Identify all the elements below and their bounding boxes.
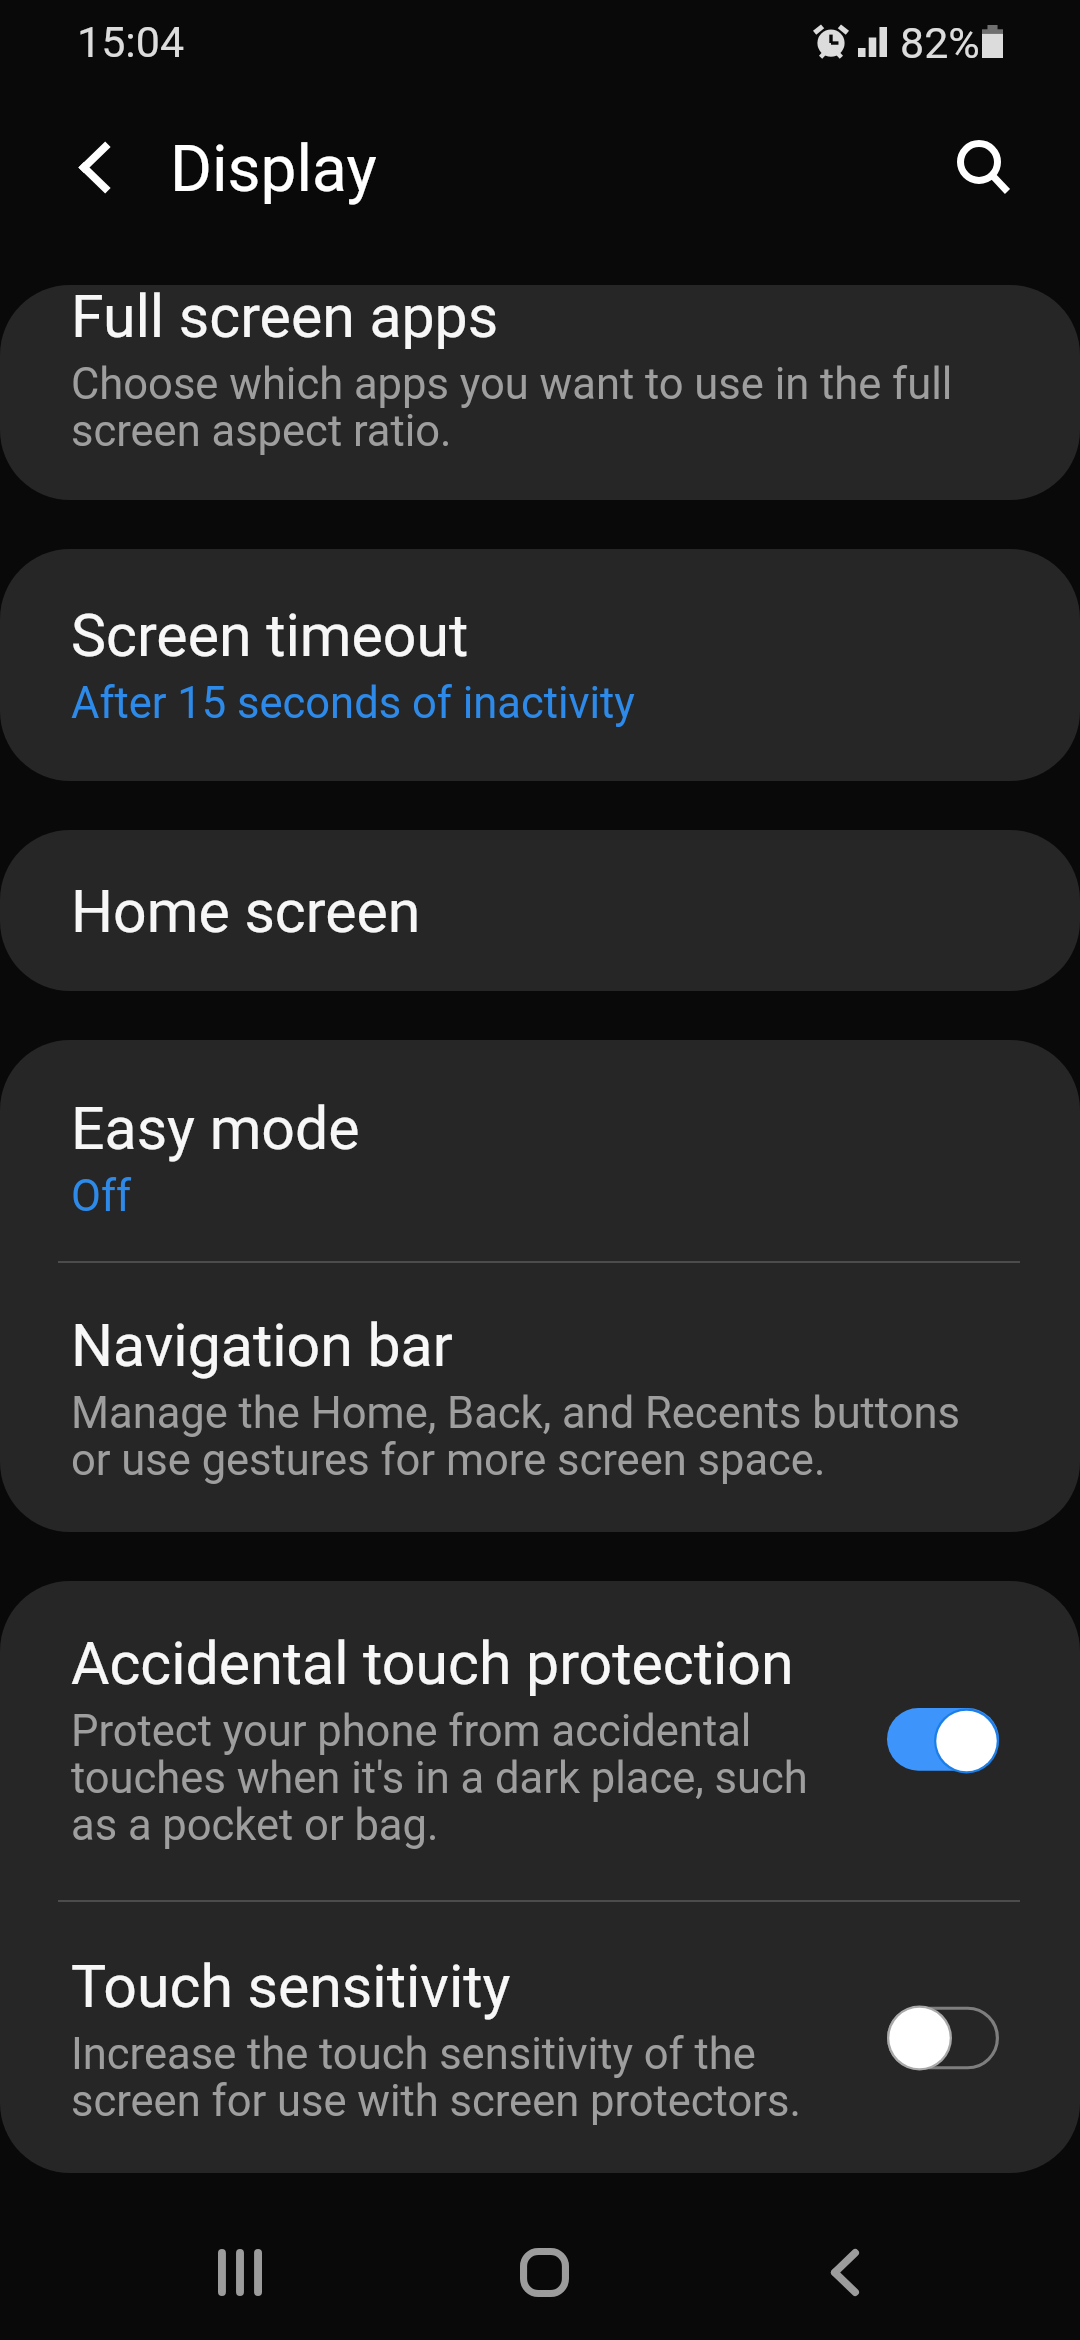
button[interactable]: Navigate up bbox=[46, 119, 142, 215]
button[interactable]: Touch sensitivity bbox=[0, 1902, 1080, 2173]
button[interactable]: Search bbox=[934, 117, 1034, 217]
staticText: 15:04 bbox=[77, 17, 185, 67]
staticText: Home screen bbox=[71, 883, 421, 945]
staticText: Accidental touch protection bbox=[71, 1635, 794, 1697]
staticText: Protect your phone from accidental touch… bbox=[71, 1709, 808, 1850]
button[interactable]: Accidental touch protection bbox=[0, 1581, 1080, 1900]
button[interactable]: Home bbox=[484, 2212, 604, 2332]
staticText: Increase the touch sensitivity of the sc… bbox=[71, 2032, 801, 2126]
button[interactable]: Back bbox=[785, 2212, 905, 2332]
staticText: Easy mode bbox=[71, 1100, 360, 1162]
staticText: Choose which apps you want to use in the… bbox=[71, 362, 953, 456]
staticText: Navigation bar bbox=[71, 1317, 453, 1379]
button[interactable]: Recent apps bbox=[180, 2212, 300, 2332]
staticText: Screen timeout bbox=[71, 607, 469, 669]
button[interactable]: Full screen apps bbox=[0, 285, 1080, 500]
staticText: Manage the Home, Back, and Recents butto… bbox=[71, 1391, 960, 1485]
staticText: Full screen apps bbox=[71, 288, 499, 350]
button[interactable]: Switch off bbox=[887, 2005, 999, 2071]
staticText: Off bbox=[71, 1174, 132, 1221]
button[interactable]: Navigation bar bbox=[0, 1263, 1080, 1532]
button[interactable]: Home screen bbox=[0, 830, 1080, 991]
button[interactable]: Screen timeout bbox=[0, 549, 1080, 781]
staticText: Display bbox=[170, 132, 377, 206]
button[interactable]: Switch on bbox=[887, 1708, 999, 1774]
button[interactable]: Easy mode bbox=[0, 1040, 1080, 1261]
staticText: After 15 seconds of inactivity bbox=[71, 681, 635, 728]
staticText: Touch sensitivity bbox=[71, 1958, 511, 2020]
staticText: 82% bbox=[900, 18, 980, 68]
